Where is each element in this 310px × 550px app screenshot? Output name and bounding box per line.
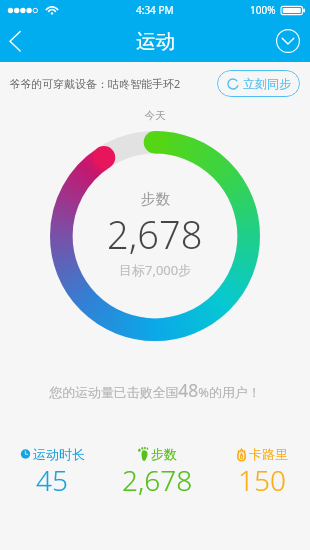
button[interactable]: 运动时长 <box>2 446 102 484</box>
staticText: 运动时长 <box>33 446 85 462</box>
staticText: 您的运动量已击败全国48%的用户！ <box>0 378 310 402</box>
staticText: 步数 <box>151 446 177 462</box>
staticText: 卡路里 <box>249 446 288 462</box>
staticText: 爷爷的可穿戴设备：咕咚智能手环2 <box>9 76 181 91</box>
staticText: 4:34 PM <box>136 3 174 17</box>
staticText: 150 <box>238 461 286 499</box>
staticText: 2,678 <box>107 208 203 260</box>
button[interactable]: 卡路里 <box>212 446 310 484</box>
staticText: 立刻同步 <box>243 76 291 91</box>
staticText: 2,678 <box>122 461 193 499</box>
staticText: 运动 <box>136 29 175 54</box>
staticText: 100% <box>250 3 276 17</box>
staticText: 45 <box>36 461 68 499</box>
button[interactable]: Expand <box>275 28 301 54</box>
staticText: 步数 <box>141 190 170 208</box>
button[interactable]: 立刻同步 <box>217 70 300 97</box>
button[interactable]: 步数 <box>107 446 207 484</box>
button[interactable]: Back <box>0 20 34 62</box>
staticText: 今天 <box>0 109 310 122</box>
staticText: 目标7,000步 <box>119 261 192 279</box>
